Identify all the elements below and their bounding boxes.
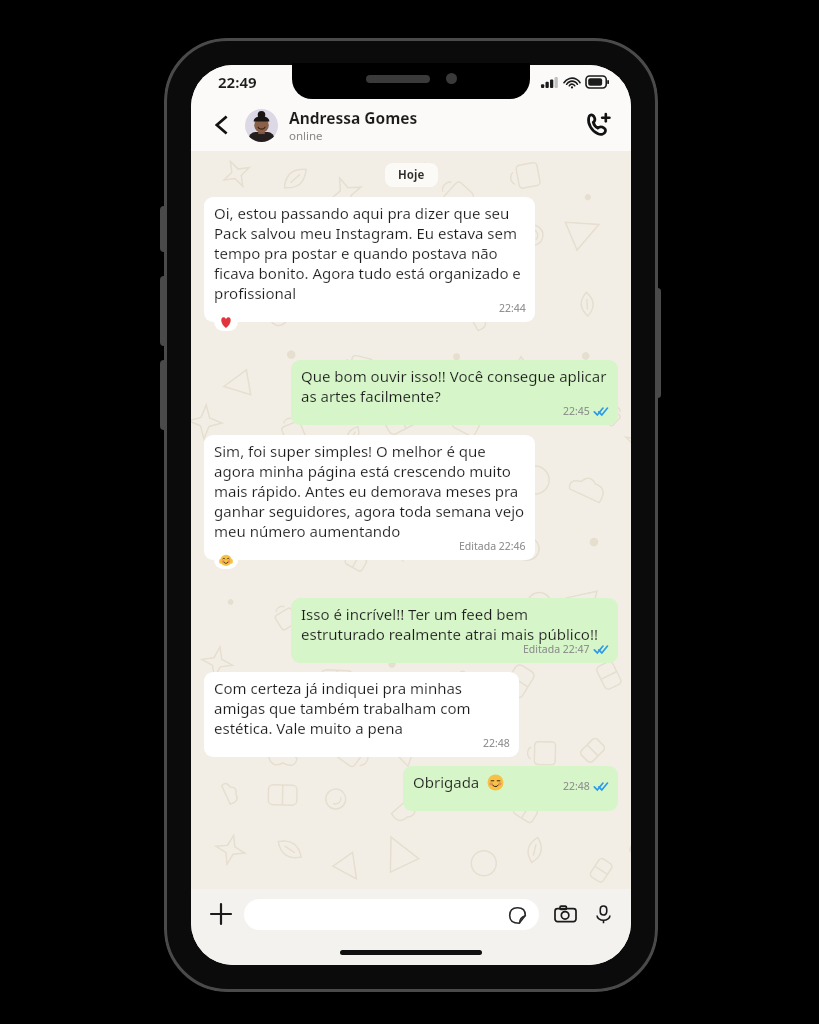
button[interactable]: Stickers <box>244 899 539 930</box>
button[interactable]: Isso é incrível!! Ter um feed bem estrut… <box>291 598 618 663</box>
staticText: 22:48 <box>483 736 510 750</box>
staticText: Andressa Gomes <box>289 107 418 128</box>
button[interactable]: Reaction <box>214 313 238 331</box>
button[interactable]: Obrigada <box>403 766 618 811</box>
button[interactable]: Voice message <box>588 899 618 929</box>
staticText: Obrigada <box>413 772 480 792</box>
button[interactable]: Hoje <box>385 163 438 187</box>
button[interactable]: Reaction <box>214 551 238 569</box>
button[interactable]: Com certeza já indiquei pra minhas amiga… <box>204 672 519 757</box>
staticText: Com certeza já indiquei pra minhas amiga… <box>214 678 510 738</box>
button[interactable]: Camera <box>549 898 581 930</box>
button[interactable]: Attach <box>204 897 238 931</box>
staticText: Sim, foi super simples! O melhor é que a… <box>214 441 526 541</box>
staticText: 22:45 <box>563 404 590 418</box>
button[interactable]: Que bom ouvir isso!! Você consegue aplic… <box>291 360 618 425</box>
staticText: 22:48 <box>563 779 590 793</box>
staticText: online <box>289 128 323 144</box>
staticText: Que bom ouvir isso!! Você consegue aplic… <box>301 366 609 406</box>
button[interactable]: Andressa Gomes <box>245 107 579 144</box>
staticText: Hoje <box>398 167 425 183</box>
button[interactable]: Oi, estou passando aqui pra dizer que se… <box>204 197 535 322</box>
staticText: Editada 22:47 <box>523 642 590 656</box>
button[interactable]: Back <box>205 108 239 142</box>
button[interactable]: Voice call <box>579 106 617 144</box>
staticText: Isso é incrível!! Ter um feed bem estrut… <box>301 604 609 644</box>
other: Stickers <box>507 905 527 925</box>
staticText: Editada 22:46 <box>459 539 526 553</box>
staticText: 22:44 <box>499 301 526 315</box>
button[interactable]: Sim, foi super simples! O melhor é que a… <box>204 435 535 560</box>
staticText: Oi, estou passando aqui pra dizer que se… <box>214 203 526 303</box>
staticText: 22:49 <box>218 72 257 92</box>
